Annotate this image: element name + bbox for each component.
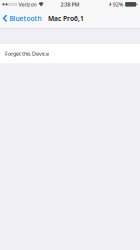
staticText: Mac Pro6,1 <box>48 14 84 23</box>
staticText: Forget this Device <box>5 50 49 57</box>
staticText: 92% <box>113 1 124 8</box>
staticText: 2:38 PM <box>60 1 79 8</box>
staticText: Bluetooth <box>9 14 41 23</box>
button[interactable]: Forget this Device <box>0 44 140 63</box>
button[interactable]: Bluetooth <box>0 9 46 28</box>
staticText: Verizon <box>18 1 36 8</box>
